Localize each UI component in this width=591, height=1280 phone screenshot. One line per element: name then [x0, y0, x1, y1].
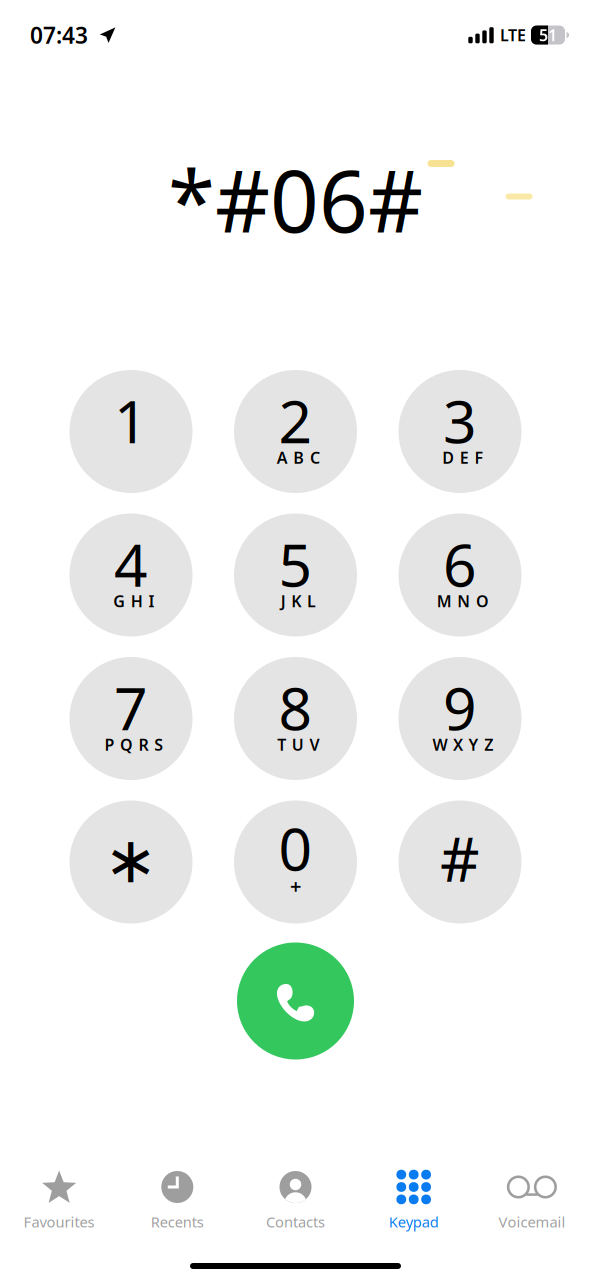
button[interactable]: Contacts	[236, 1162, 355, 1252]
staticText: WXYZ	[432, 734, 493, 755]
staticText: 9	[443, 668, 477, 746]
staticText: 1	[114, 381, 148, 459]
staticText: 51	[539, 24, 557, 46]
button[interactable]: 1	[69, 370, 192, 493]
button[interactable]: 6	[398, 513, 521, 636]
button[interactable]: Recents	[118, 1162, 236, 1252]
staticText: 6	[443, 525, 477, 603]
staticText: ∗	[104, 824, 158, 896]
button[interactable]: Keypad	[355, 1162, 473, 1252]
staticText: 0	[278, 809, 312, 887]
staticText: #	[440, 817, 480, 899]
staticText: MNO	[437, 590, 489, 612]
staticText: 5	[278, 525, 312, 603]
button[interactable]: Call	[237, 942, 354, 1059]
staticText: PQRS	[104, 734, 163, 755]
staticText: JKL	[281, 590, 316, 612]
staticText: 07:43	[30, 20, 88, 50]
staticText: 7	[114, 668, 148, 746]
button[interactable]: Favourites	[0, 1162, 118, 1252]
button[interactable]: ∗	[69, 800, 192, 923]
staticText: Favourites	[24, 1212, 95, 1231]
button[interactable]: Voicemail	[473, 1162, 591, 1252]
button[interactable]: 2	[234, 370, 357, 493]
staticText: TUV	[277, 734, 319, 755]
button[interactable]: 3	[398, 370, 521, 493]
staticText: LTE	[500, 24, 526, 46]
button[interactable]: 0	[234, 800, 357, 923]
button[interactable]: 8	[234, 657, 357, 780]
staticText: *#06#	[168, 143, 423, 256]
button[interactable]: #	[398, 800, 521, 923]
staticText: 3	[443, 381, 477, 459]
staticText: Keypad	[389, 1212, 439, 1231]
staticText: 2	[278, 381, 312, 459]
staticText: Contacts	[266, 1212, 325, 1231]
staticText: GHI	[113, 590, 154, 612]
staticText: 4	[114, 525, 148, 603]
button[interactable]: 9	[398, 657, 521, 780]
staticText: DEF	[442, 447, 483, 468]
staticText: Voicemail	[498, 1212, 565, 1231]
staticText: Recents	[151, 1212, 204, 1231]
staticText: 8	[278, 668, 312, 746]
button[interactable]: 5	[234, 513, 357, 636]
button[interactable]: 4	[69, 513, 192, 636]
button[interactable]: 7	[69, 657, 192, 780]
staticText: +	[290, 873, 301, 899]
staticText: ABC	[277, 447, 320, 468]
